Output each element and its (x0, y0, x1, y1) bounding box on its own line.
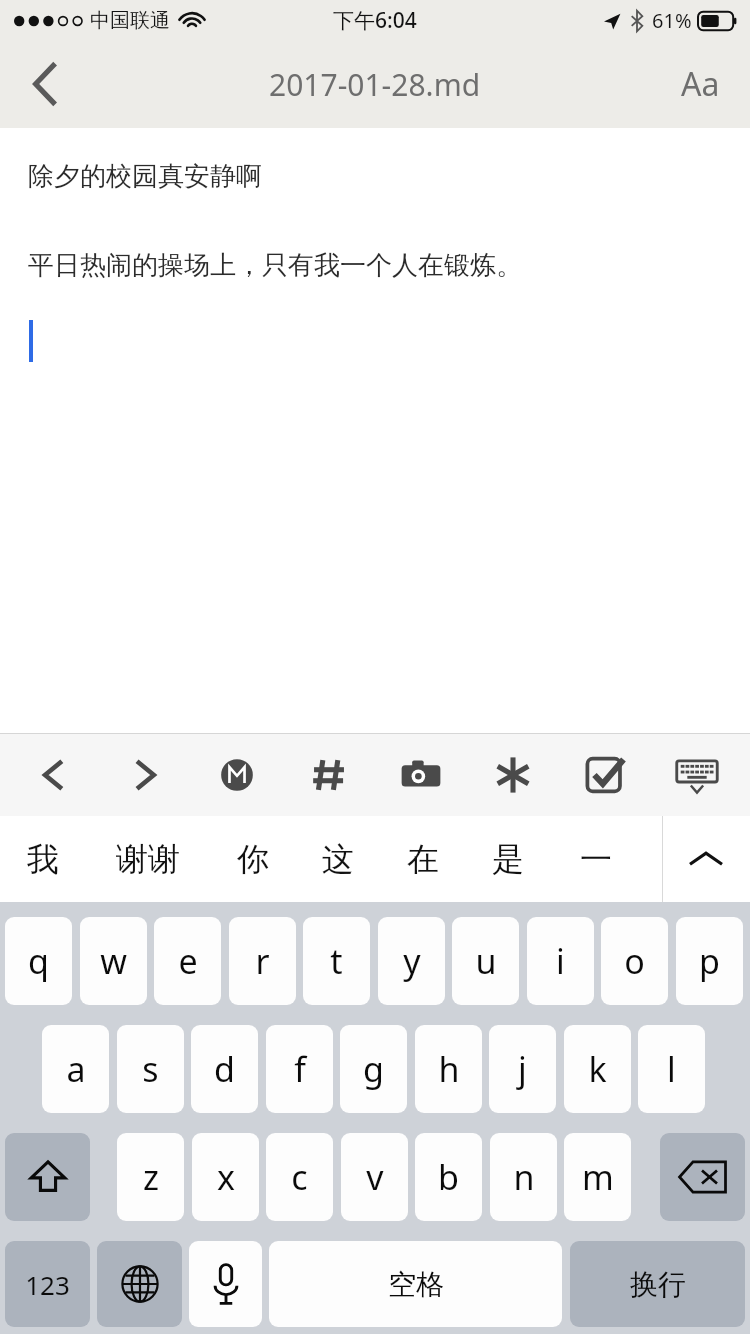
staticText: 是 (492, 839, 524, 879)
staticText: 下午6:04 (333, 6, 417, 35)
button[interactable]: Shift (5, 1133, 90, 1221)
button[interactable]: Back (0, 40, 90, 128)
button[interactable]: 换行 (570, 1241, 745, 1327)
staticText: i (556, 938, 565, 984)
button[interactable]: Voice input (189, 1241, 262, 1327)
staticText: m (582, 1154, 614, 1200)
staticText: 61% (652, 7, 692, 34)
button[interactable]: a (42, 1025, 109, 1113)
staticText: 除夕的校园真安静啊 (28, 160, 262, 193)
button[interactable]: n (490, 1133, 557, 1221)
staticText: f (294, 1046, 306, 1092)
button[interactable]: y (378, 917, 445, 1005)
staticText: z (143, 1154, 159, 1200)
staticText: Aa (681, 62, 720, 106)
staticText: j (518, 1046, 527, 1092)
staticText: w (100, 938, 127, 984)
button[interactable]: f (266, 1025, 333, 1113)
staticText: 这 (322, 839, 354, 879)
button[interactable]: d (191, 1025, 258, 1113)
button[interactable]: x (192, 1133, 259, 1221)
button[interactable]: Checklist (568, 733, 642, 816)
staticText: v (366, 1154, 384, 1200)
staticText: 平日热闹的操场上，只有我一个人在锻炼。 (28, 249, 522, 282)
staticText: q (28, 938, 49, 984)
staticText: y (403, 938, 421, 984)
button[interactable]: c (266, 1133, 333, 1221)
button[interactable]: q (5, 917, 72, 1005)
staticText: n (513, 1154, 535, 1200)
button[interactable]: g (340, 1025, 407, 1113)
staticText: u (475, 938, 497, 984)
button[interactable]: r (229, 917, 296, 1005)
staticText: p (699, 938, 720, 984)
button[interactable]: 在 (380, 816, 465, 902)
staticText: g (363, 1046, 384, 1092)
staticText: 一 (580, 839, 612, 879)
staticText: 在 (407, 839, 439, 879)
button[interactable]: 我 (0, 816, 85, 902)
button[interactable]: Delete (660, 1133, 745, 1221)
staticText: b (438, 1154, 459, 1200)
staticText: 我 (27, 839, 59, 879)
button[interactable]: k (564, 1025, 631, 1113)
button[interactable]: o (601, 917, 668, 1005)
staticText: 空格 (388, 1267, 444, 1302)
staticText: t (330, 938, 343, 984)
button[interactable]: l (638, 1025, 705, 1113)
button[interactable]: h (415, 1025, 482, 1113)
staticText: c (291, 1154, 308, 1200)
staticText: 你 (237, 839, 269, 879)
staticText: 2017-01-28.md (269, 64, 481, 105)
button[interactable]: Aa (650, 40, 750, 128)
button[interactable]: Next (108, 733, 182, 816)
button[interactable]: Hide keyboard (660, 733, 734, 816)
button[interactable]: i (527, 917, 594, 1005)
button[interactable]: 一 (550, 816, 642, 902)
staticText: o (624, 938, 645, 984)
staticText: l (667, 1046, 676, 1092)
staticText: e (178, 938, 198, 984)
button[interactable]: Previous (16, 733, 90, 816)
button[interactable]: Expand suggestions (662, 816, 750, 902)
button[interactable]: b (415, 1133, 482, 1221)
staticText: 中国联通 (90, 8, 170, 33)
button[interactable]: s (117, 1025, 184, 1113)
staticText: h (438, 1046, 460, 1092)
button[interactable]: j (489, 1025, 556, 1113)
button[interactable]: 123 (5, 1241, 90, 1327)
button[interactable]: 空格 (269, 1241, 562, 1327)
staticText: 123 (25, 1267, 70, 1302)
button[interactable]: Emphasis (476, 733, 550, 816)
staticText: 换行 (630, 1267, 686, 1302)
button[interactable]: Camera (384, 733, 458, 816)
button[interactable]: p (676, 917, 743, 1005)
button[interactable]: e (154, 917, 221, 1005)
button[interactable]: Markdown (200, 733, 274, 816)
staticText: s (142, 1046, 159, 1092)
button[interactable]: t (303, 917, 370, 1005)
button[interactable]: v (341, 1133, 408, 1221)
staticText: x (217, 1154, 235, 1200)
button[interactable]: 谢谢 (85, 816, 210, 902)
button[interactable]: m (564, 1133, 631, 1221)
staticText: r (255, 938, 270, 984)
button[interactable]: 是 (465, 816, 550, 902)
button[interactable]: 这 (295, 816, 380, 902)
button[interactable]: Switch language (97, 1241, 182, 1327)
button[interactable]: z (117, 1133, 184, 1221)
button[interactable]: Heading (292, 733, 366, 816)
staticText: a (66, 1046, 86, 1092)
button[interactable]: 你 (210, 816, 295, 902)
staticText: d (214, 1046, 235, 1092)
button[interactable]: u (452, 917, 519, 1005)
button[interactable]: w (80, 917, 147, 1005)
staticText: 谢谢 (116, 839, 180, 879)
staticText: k (588, 1046, 607, 1092)
